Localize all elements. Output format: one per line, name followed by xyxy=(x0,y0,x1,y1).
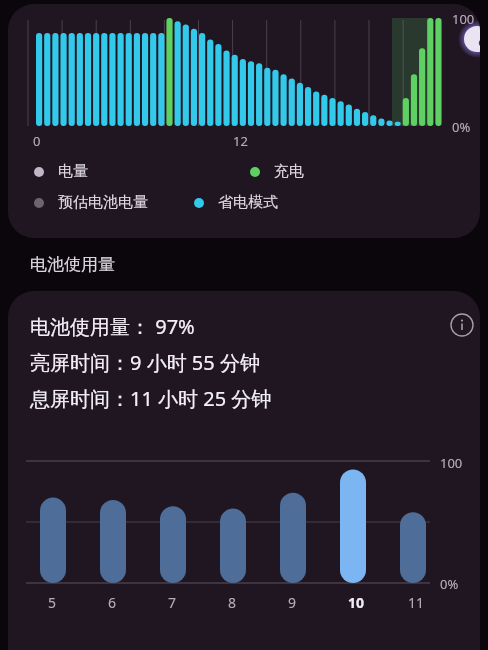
staticText: 电量 xyxy=(58,162,88,181)
staticText: 100 xyxy=(452,10,475,28)
staticText: 0 xyxy=(33,132,41,150)
other: Battery status xyxy=(458,20,480,58)
staticText: 0% xyxy=(452,118,471,136)
staticText: 亮屏时间：9 小时 55 分钟 xyxy=(30,349,260,376)
staticText: 5 xyxy=(48,593,57,612)
staticText: 7 xyxy=(168,593,177,612)
staticText: 电池使用量： 97% xyxy=(30,313,195,340)
staticText: 8 xyxy=(228,593,237,612)
button[interactable]: 电量 xyxy=(34,162,88,181)
staticText: 100 xyxy=(440,454,463,472)
button[interactable]: Info xyxy=(442,305,480,345)
button[interactable]: 0 xyxy=(8,4,480,238)
button[interactable]: 充电 xyxy=(250,162,304,181)
button[interactable]: 省电模式 xyxy=(194,193,278,212)
staticText: 充电 xyxy=(274,162,304,181)
staticText: 省电模式 xyxy=(218,193,278,212)
staticText: 0% xyxy=(440,575,459,593)
staticText: 6 xyxy=(108,593,117,612)
staticText: 11 xyxy=(408,593,425,612)
staticText: 息屏时间：11 小时 25 分钟 xyxy=(30,385,272,412)
staticText: 12 xyxy=(233,132,248,150)
staticText: 电池使用量 xyxy=(30,254,115,275)
button[interactable]: 预估电池电量 xyxy=(34,193,148,212)
staticText: 预估电池电量 xyxy=(58,193,148,212)
button[interactable]: 电池使用量： 97% xyxy=(8,291,480,650)
staticText: 9 xyxy=(288,593,297,612)
staticText: 10 xyxy=(348,593,365,612)
